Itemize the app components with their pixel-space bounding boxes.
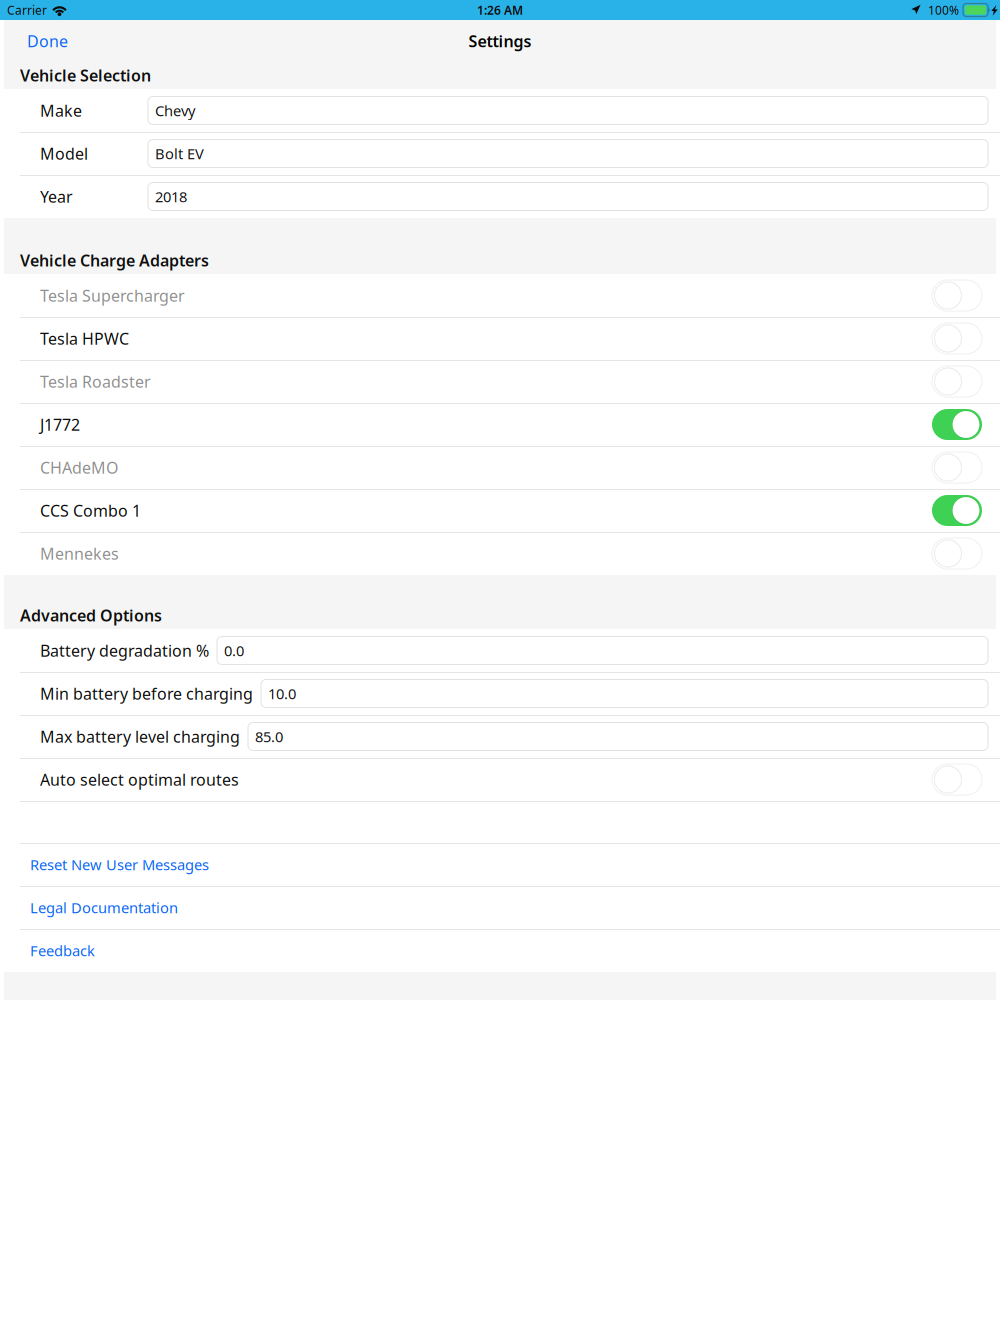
staticText: Tesla Supercharger <box>40 285 185 306</box>
button[interactable]: Auto select optimal routes <box>0 758 1000 801</box>
staticText: Mennekes <box>40 543 119 564</box>
staticText: 100% <box>928 2 959 18</box>
staticText: 0.0 <box>224 641 244 660</box>
staticText: CCS Combo 1 <box>40 500 141 521</box>
staticText: Bolt EV <box>155 144 204 163</box>
staticText: Carrier <box>7 2 47 18</box>
button[interactable]: Model <box>0 132 1000 175</box>
staticText: Vehicle Selection <box>20 65 151 86</box>
staticText: Vehicle Charge Adapters <box>20 250 209 271</box>
button[interactable]: Legal Documentation <box>0 886 1000 929</box>
staticText: Auto select optimal routes <box>40 769 239 790</box>
staticText: J1772 <box>40 414 80 435</box>
staticText: 2018 <box>155 187 187 206</box>
staticText: Max battery level charging <box>40 726 240 747</box>
staticText: Model <box>40 143 88 164</box>
staticText: Chevy <box>155 101 195 120</box>
staticText: Tesla Roadster <box>40 371 151 392</box>
staticText: Min battery before charging <box>40 683 253 704</box>
staticText: Reset New User Messages <box>30 855 209 874</box>
staticText: Legal Documentation <box>30 898 178 917</box>
staticText: 85.0 <box>255 727 283 746</box>
button[interactable]: Battery degradation % <box>0 629 1000 672</box>
button[interactable]: CHAdeMO <box>0 446 1000 489</box>
staticText: Feedback <box>30 941 95 960</box>
button[interactable]: Tesla Supercharger <box>0 274 1000 317</box>
button[interactable]: Feedback <box>0 929 1000 972</box>
staticText: Battery degradation % <box>40 640 209 661</box>
button[interactable]: Tesla HPWC <box>0 317 1000 360</box>
button[interactable]: Mennekes <box>0 532 1000 575</box>
button[interactable]: J1772 <box>0 403 1000 446</box>
staticText: CHAdeMO <box>40 457 118 478</box>
staticText: Tesla HPWC <box>40 328 129 349</box>
staticText: 10.0 <box>268 684 296 703</box>
button[interactable]: Done <box>13 20 82 62</box>
staticText: 1:26 AM <box>477 2 523 18</box>
staticText: Make <box>40 100 82 121</box>
staticText: Year <box>40 186 73 207</box>
button[interactable]: Max battery level charging <box>0 715 1000 758</box>
staticText: Settings <box>468 30 531 52</box>
button[interactable]: Min battery before charging <box>0 672 1000 715</box>
button[interactable]: Reset New User Messages <box>0 843 1000 886</box>
staticText: Advanced Options <box>20 605 162 626</box>
button[interactable]: Make <box>0 89 1000 132</box>
staticText: Done <box>27 30 68 52</box>
button[interactable]: CCS Combo 1 <box>0 489 1000 532</box>
button[interactable]: Tesla Roadster <box>0 360 1000 403</box>
button[interactable]: Year <box>0 175 1000 218</box>
